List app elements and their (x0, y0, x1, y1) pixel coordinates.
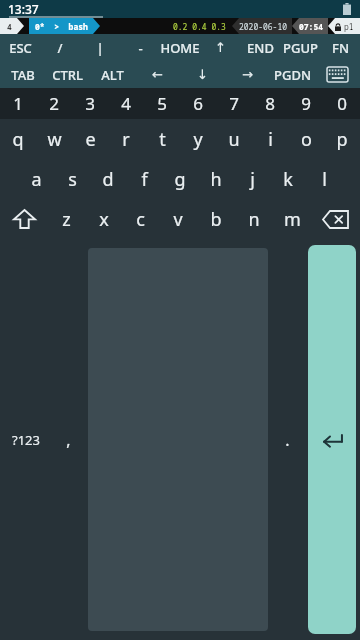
staticText: ← (152, 67, 163, 82)
button[interactable]: 3 (72, 88, 108, 119)
staticText: a (31, 167, 42, 192)
staticText: - (138, 39, 143, 57)
staticText: 4 (121, 92, 131, 115)
button[interactable]: q (0, 119, 36, 159)
button[interactable]: 9 (288, 88, 324, 119)
button[interactable]: PGUP (280, 34, 320, 61)
staticText: 8 (265, 92, 275, 115)
staticText: TAB (11, 66, 35, 84)
staticText: ↑ (215, 40, 226, 55)
staticText: 13:37 (8, 1, 39, 17)
button[interactable]: h (198, 159, 234, 199)
staticText: END (247, 39, 274, 57)
button[interactable]: w (36, 119, 72, 159)
staticText: 0* > bash (35, 21, 88, 32)
staticText: e (85, 127, 96, 152)
button[interactable]: ?123 (0, 239, 52, 640)
button[interactable]: | (80, 34, 120, 61)
button[interactable]: PGDN (270, 61, 315, 88)
button[interactable]: HOME (160, 34, 200, 61)
staticText: → (242, 67, 253, 82)
button[interactable]: END (240, 34, 280, 61)
staticText: t (159, 127, 166, 152)
button[interactable]: 4 (108, 88, 144, 119)
button[interactable]: FN (320, 34, 360, 61)
button[interactable]: 5 (144, 88, 180, 119)
button[interactable]: / (40, 34, 80, 61)
staticText: 4 (7, 21, 12, 32)
button[interactable]: 1 (0, 88, 36, 119)
staticText: , (66, 429, 71, 451)
button[interactable]: ESC (0, 34, 40, 61)
button[interactable]: z (48, 199, 85, 239)
button[interactable]: Shift (0, 199, 48, 239)
staticText: p1 (344, 21, 354, 32)
button[interactable]: e (72, 119, 108, 159)
staticText: 2 (49, 92, 59, 115)
button[interactable]: - (120, 34, 160, 61)
button[interactable]: d (90, 159, 126, 199)
button[interactable]: CTRL (45, 61, 90, 88)
button[interactable]: f (126, 159, 162, 199)
button[interactable]: s (54, 159, 90, 199)
button[interactable]: p (324, 119, 360, 159)
button[interactable]: y (180, 119, 216, 159)
staticText: g (174, 167, 186, 192)
staticText: . (285, 429, 290, 451)
button[interactable]: TAB (0, 61, 45, 88)
button[interactable]: g (162, 159, 198, 199)
staticText: 0 (337, 92, 347, 115)
button[interactable]: t (144, 119, 180, 159)
button[interactable]: → (225, 61, 270, 88)
button[interactable]: j (234, 159, 270, 199)
button[interactable]: n (235, 199, 273, 239)
staticText: y (193, 127, 203, 152)
button[interactable]: m (273, 199, 311, 239)
staticText: FN (332, 39, 349, 57)
staticText: z (62, 207, 71, 232)
button[interactable]: 8 (252, 88, 288, 119)
button[interactable]: x (85, 199, 122, 239)
button[interactable]: c (122, 199, 159, 239)
button[interactable]: l (306, 159, 342, 199)
staticText: k (283, 167, 293, 192)
staticText: h (210, 167, 222, 192)
button[interactable]: 2 (36, 88, 72, 119)
button[interactable]: . (271, 239, 304, 640)
button[interactable]: 0 (324, 88, 360, 119)
staticText: 3 (85, 92, 95, 115)
staticText: | (96, 39, 104, 57)
button[interactable]: k (270, 159, 306, 199)
button[interactable]: ALT (90, 61, 135, 88)
button[interactable]: b (197, 199, 235, 239)
staticText: x (99, 207, 109, 232)
staticText: w (47, 127, 62, 152)
button[interactable]: ↓ (180, 61, 225, 88)
button[interactable]: v (159, 199, 197, 239)
button[interactable]: a (18, 159, 54, 199)
button[interactable]: r (108, 119, 144, 159)
button[interactable]: Backspace (311, 199, 360, 239)
staticText: m (284, 207, 301, 232)
staticText: 7 (229, 92, 239, 115)
button[interactable]: Enter (308, 245, 356, 634)
button[interactable]: 7 (216, 88, 252, 119)
button[interactable]: 6 (180, 88, 216, 119)
button[interactable]: Hide keyboard (315, 61, 360, 88)
staticText: d (102, 167, 114, 192)
button[interactable]: , (52, 239, 85, 640)
button[interactable]: ↑ (200, 34, 240, 61)
staticText: q (12, 127, 24, 152)
button[interactable]: i (252, 119, 288, 159)
staticText: f (141, 167, 148, 192)
staticText: n (248, 207, 260, 232)
staticText: v (173, 207, 183, 232)
staticText: / (57, 39, 63, 57)
button[interactable]: ← (135, 61, 180, 88)
staticText: 5 (157, 92, 167, 115)
button[interactable]: u (216, 119, 252, 159)
staticText: ↓ (197, 67, 208, 82)
button[interactable]: o (288, 119, 324, 159)
staticText: r (122, 127, 130, 152)
